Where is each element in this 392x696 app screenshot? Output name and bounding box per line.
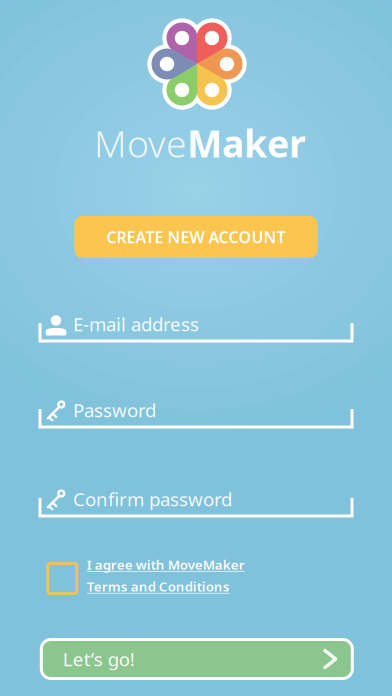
staticText: Move [94, 118, 187, 168]
button[interactable]: Let’s go! [40, 638, 354, 680]
staticText: CREATE NEW ACCOUNT [106, 226, 285, 248]
button[interactable]: I agree with MoveMaker [48, 550, 298, 606]
staticText: I agree with MoveMaker [87, 556, 245, 573]
staticText: Maker [187, 118, 306, 168]
staticText: E-mail address [73, 312, 199, 336]
staticText: Let’s go! [63, 647, 135, 671]
staticText: Confirm password [73, 487, 232, 511]
staticText: Password [73, 398, 156, 422]
button[interactable]: CREATE NEW ACCOUNT [74, 216, 317, 258]
staticText: Terms and Conditions [87, 577, 230, 595]
